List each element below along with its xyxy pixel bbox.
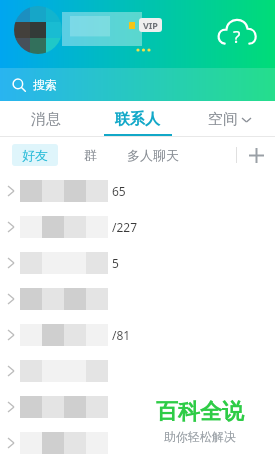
button[interactable]: 多人聊天 — [119, 144, 187, 166]
button[interactable] — [0, 353, 275, 389]
staticText: /227 — [112, 219, 138, 235]
staticText: 65 — [112, 183, 126, 199]
button[interactable]: 空间 — [183, 101, 275, 137]
button[interactable]: 联系人 — [91, 101, 183, 137]
button[interactable]: 百科全说 — [125, 371, 275, 471]
button[interactable] — [0, 425, 275, 461]
button[interactable]: 65 — [0, 173, 275, 209]
staticText: /81 — [112, 327, 131, 343]
button[interactable]: /227 — [0, 209, 275, 245]
button[interactable]: Profile avatar — [14, 6, 62, 54]
staticText: ? — [233, 25, 241, 48]
staticText: 好友 — [22, 147, 48, 163]
button[interactable]: VIP — [128, 18, 162, 32]
staticText: 搜索 — [33, 77, 57, 92]
staticText: 5 — [112, 255, 119, 271]
button[interactable] — [0, 281, 275, 317]
staticText: 消息 — [31, 110, 61, 129]
button[interactable] — [0, 389, 275, 425]
staticText: 群 — [84, 147, 97, 163]
button[interactable]: Help — [215, 12, 259, 56]
button[interactable]: 5 — [0, 245, 275, 281]
button[interactable]: 搜索 — [0, 68, 275, 101]
button[interactable]: 群 — [76, 144, 105, 166]
staticText: 百科全说 — [156, 398, 244, 426]
button[interactable]: 消息 — [0, 101, 91, 137]
staticText: 多人聊天 — [127, 147, 179, 163]
staticText: VIP — [143, 19, 158, 31]
staticText: 空间 — [208, 110, 238, 129]
staticText: 助你轻松解决 — [164, 429, 236, 444]
staticText: 联系人 — [115, 110, 160, 129]
button[interactable]: Add contact — [237, 137, 275, 173]
button[interactable]: /81 — [0, 317, 275, 353]
button[interactable]: 好友 — [12, 144, 58, 166]
